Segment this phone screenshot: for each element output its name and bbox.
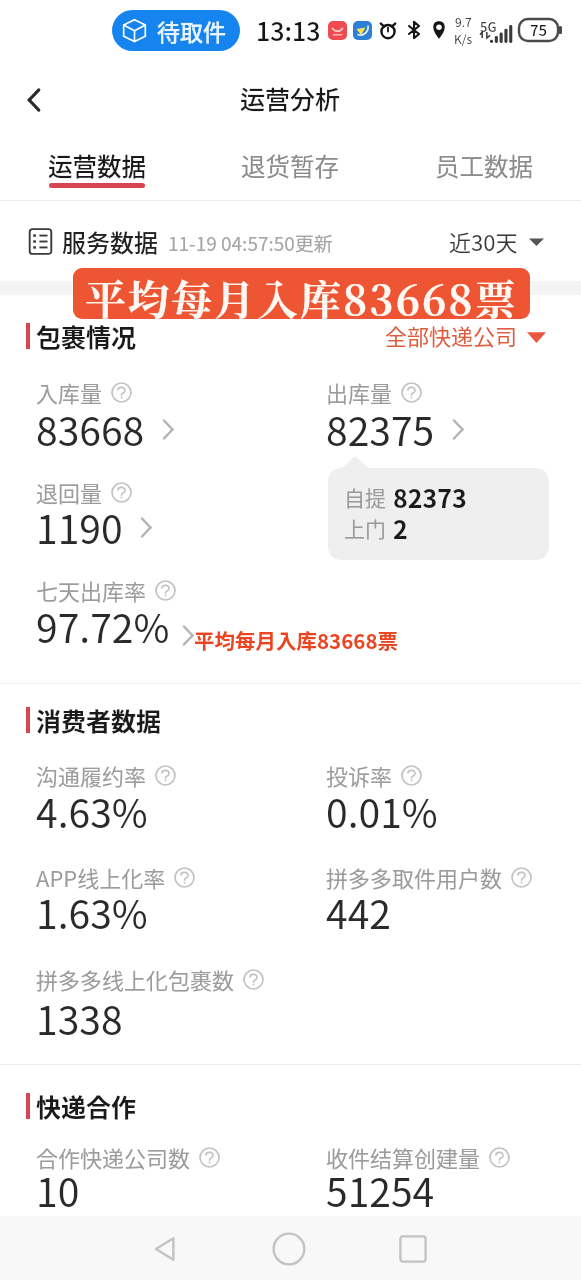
staticText: 82373 <box>393 479 467 515</box>
staticText: 近30天 <box>449 225 518 257</box>
staticText: 平均每月入库83668票 <box>85 268 518 319</box>
staticText: 13:13 <box>256 12 321 48</box>
button[interactable]: 投诉率 <box>326 759 422 791</box>
staticText: 包裹情况 <box>36 318 137 350</box>
staticText: 拼多多线上化包裹数 <box>36 963 235 995</box>
button[interactable]: 10 <box>36 1162 80 1218</box>
staticText: 退货暂存 <box>241 148 339 183</box>
staticText: 待取件 <box>157 14 226 47</box>
staticText: 运营数据 <box>48 148 146 183</box>
staticText: 出库量 <box>326 376 393 408</box>
button[interactable]: Home <box>263 1223 314 1274</box>
button[interactable]: 83668 <box>36 401 180 457</box>
staticText: 沟通履约率 <box>36 759 147 791</box>
button[interactable]: 入库量 <box>36 376 132 408</box>
staticText: 11-19 04:57:50更新 <box>168 229 333 257</box>
button[interactable]: 82375 <box>326 401 470 457</box>
staticText: K/s <box>454 30 473 47</box>
button[interactable]: 退回量 <box>36 476 132 508</box>
button[interactable]: 1190 <box>36 499 158 555</box>
button[interactable]: 七天出库率 <box>36 574 176 606</box>
staticText: 75 <box>530 19 548 41</box>
button[interactable]: Back <box>10 76 58 124</box>
staticText: 全部快递公司 <box>385 319 518 351</box>
button[interactable]: 员工数据 <box>387 136 581 200</box>
staticText: 2 <box>393 510 408 546</box>
staticText: 快递合作 <box>36 1088 137 1120</box>
button[interactable]: 沟通履约率 <box>36 759 176 791</box>
staticText: 拼多多取件用户数 <box>326 861 503 893</box>
staticText: 1338 <box>36 990 123 1046</box>
staticText: APP线上化率 <box>36 861 166 893</box>
staticText: 服务数据 <box>62 224 158 259</box>
staticText: 入库量 <box>36 376 103 408</box>
staticText: 自提 <box>344 482 386 512</box>
staticText: 合作快递公司数 <box>36 1141 191 1173</box>
button[interactable]: 全部快递公司 <box>385 320 546 352</box>
button[interactable]: 1338 <box>36 990 123 1046</box>
staticText: 97.72% <box>36 598 170 654</box>
button[interactable]: 0.01% <box>326 783 438 839</box>
staticText: 1.63% <box>36 884 148 940</box>
button[interactable]: Recent apps <box>387 1223 438 1274</box>
staticText: 442 <box>326 884 391 940</box>
button[interactable]: 近30天 <box>449 225 544 257</box>
button[interactable]: 1.63% <box>36 884 148 940</box>
staticText: 退回量 <box>36 476 103 508</box>
staticText: 10 <box>36 1162 80 1218</box>
button[interactable]: 合作快递公司数 <box>36 1141 220 1173</box>
staticText: 1190 <box>36 499 123 555</box>
staticText: 员工数据 <box>435 148 533 183</box>
staticText: 运营分析 <box>240 80 341 116</box>
staticText: 上门 <box>344 513 386 543</box>
staticText: 平均每月入库83668票 <box>194 625 398 655</box>
staticText: 83668 <box>36 401 145 457</box>
button[interactable]: 拼多多取件用户数 <box>326 861 532 893</box>
staticText: 4.63% <box>36 783 148 839</box>
button[interactable]: 退货暂存 <box>193 136 387 200</box>
staticText: 0.01% <box>326 783 438 839</box>
button[interactable]: 运营数据 <box>0 136 193 200</box>
staticText: 消费者数据 <box>36 702 162 734</box>
staticText: 投诉率 <box>326 759 393 791</box>
button[interactable]: 收件结算创建量 <box>326 1141 510 1173</box>
staticText: 9.7 <box>455 13 472 30</box>
button[interactable]: 4.63% <box>36 783 148 839</box>
button[interactable]: 51254 <box>326 1162 435 1218</box>
button[interactable]: APP线上化率 <box>36 861 195 893</box>
button[interactable]: 拼多多线上化包裹数 <box>36 963 264 995</box>
staticText: 5G <box>480 17 497 36</box>
staticText: 收件结算创建量 <box>326 1141 481 1173</box>
button[interactable]: Back <box>139 1223 190 1274</box>
staticText: 51254 <box>326 1162 435 1218</box>
staticText: 82375 <box>326 401 435 457</box>
button[interactable]: 442 <box>326 884 391 940</box>
button[interactable]: 出库量 <box>326 376 422 408</box>
button[interactable]: 97.72% <box>36 598 409 654</box>
staticText: 七天出库率 <box>36 574 147 606</box>
